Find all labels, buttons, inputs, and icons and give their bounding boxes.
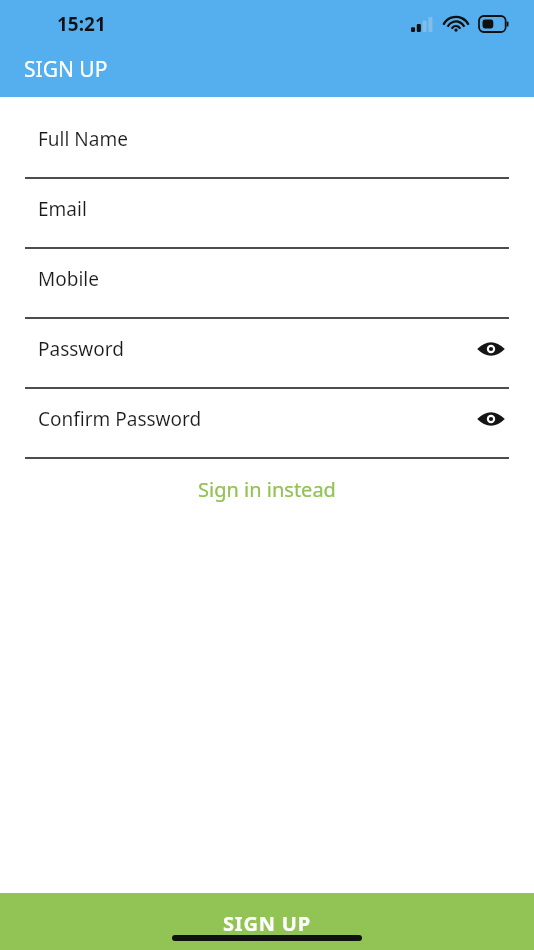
button[interactable]: Mobile — [0, 249, 534, 319]
staticText: Confirm Password — [38, 406, 202, 432]
staticText: Full Name — [38, 126, 128, 152]
staticText: Password — [38, 336, 124, 362]
staticText: 15:21 — [57, 11, 106, 37]
button[interactable]: Email — [0, 179, 534, 249]
button[interactable]: Sign in instead — [0, 459, 534, 519]
staticText: SIGN UP — [223, 910, 311, 937]
staticText: Email — [38, 196, 87, 222]
button[interactable]: Full Name — [0, 109, 534, 179]
staticText: Sign in instead — [198, 476, 336, 503]
staticText: SIGN UP — [24, 55, 108, 84]
button[interactable]: SIGN UP — [0, 893, 534, 950]
button[interactable]: Show password — [470, 402, 512, 436]
staticText: Mobile — [38, 266, 99, 292]
button[interactable]: Show password — [470, 332, 512, 366]
button[interactable]: Password — [0, 319, 534, 389]
button[interactable]: Confirm Password — [0, 389, 534, 459]
